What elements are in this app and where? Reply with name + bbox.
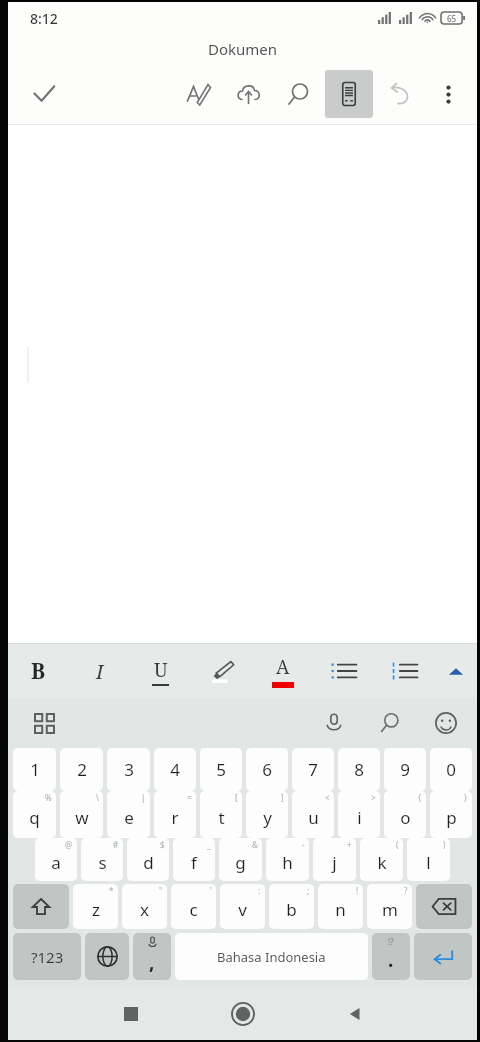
staticText: 8 [354,758,364,781]
staticText: I [96,658,104,685]
button[interactable]: Home [219,990,267,1038]
button[interactable]: \ [60,791,103,838]
staticText: > [371,792,376,803]
staticText: c [189,898,198,921]
button[interactable]: 6 [246,748,288,791]
staticText: [ [235,792,238,803]
button[interactable]: Highlight [191,644,252,698]
button[interactable]: 9 [384,748,426,791]
button[interactable]: Search [275,71,321,117]
button[interactable]: ( [360,838,403,881]
button[interactable]: ? [367,884,412,929]
button[interactable]: @ [35,838,77,881]
staticText: 7 [308,758,318,781]
button[interactable]: Comma and voice [133,933,171,980]
staticText: o [400,806,411,829]
button[interactable]: < [292,791,334,838]
button[interactable]: Backspace [416,884,472,929]
staticText: & [252,839,258,850]
button[interactable]: Ink [175,71,221,117]
button[interactable]: Voice input [317,706,351,740]
staticText: @ [65,839,73,850]
button[interactable]: Mobile view [325,70,373,118]
button[interactable]: Bulleted list [313,644,374,698]
button[interactable]: 4 [154,748,196,791]
button[interactable]: & [219,838,262,881]
staticText: !? [388,936,394,947]
staticText: U [154,657,168,683]
button[interactable]: 0 [430,748,472,791]
button[interactable]: = [154,791,196,838]
button[interactable]: Search [373,706,407,740]
button[interactable]: + [313,838,356,881]
staticText: d [143,851,154,874]
button[interactable]: Back [331,990,379,1038]
button[interactable]: Bold [8,644,69,698]
button[interactable]: { [384,791,426,838]
staticText: ? [404,885,408,896]
staticText: v [238,898,247,921]
button[interactable]: [ [200,791,242,838]
button[interactable]: Undo [377,71,423,117]
button[interactable]: 7 [292,748,334,791]
button[interactable]: Expand [435,644,477,698]
staticText: a [51,851,61,874]
staticText: y [263,806,272,829]
button[interactable]: : [220,884,265,929]
staticText: . [388,947,394,973]
button[interactable]: ?123 [13,933,81,980]
button[interactable]: Keyboard menu [24,703,64,743]
button[interactable]: Save to cloud [225,71,271,117]
button[interactable]: Change language [85,933,129,980]
staticText: l [426,851,431,874]
button[interactable]: Numbered list [374,644,435,698]
staticText: , [149,949,155,975]
button[interactable]: * [73,884,118,929]
button[interactable]: > [338,791,380,838]
staticText: n [335,898,346,921]
staticText: 3 [124,758,134,781]
staticText: 2 [77,758,87,781]
button[interactable]: 8 [338,748,380,791]
button[interactable]: ; [269,884,314,929]
staticText: h [282,851,293,874]
button[interactable]: " [122,884,167,929]
button[interactable]: Font color [252,644,313,698]
staticText: g [235,851,246,874]
staticText: ) [443,839,446,850]
staticText: % [45,792,52,803]
button[interactable]: ! [318,884,363,929]
staticText: { [418,792,422,803]
button[interactable]: ] [246,791,288,838]
button[interactable]: Emoji [429,706,463,740]
button[interactable]: ) [407,838,450,881]
button[interactable]: Bahasa Indonesia [175,933,368,980]
staticText: i [357,806,362,829]
button[interactable]: 5 [200,748,242,791]
button[interactable]: # [81,838,123,881]
button[interactable]: - [266,838,309,881]
button[interactable]: Period [372,933,410,980]
button[interactable]: Enter [414,933,472,980]
button[interactable]: } [430,791,472,838]
button[interactable]: More options [425,71,471,117]
button[interactable]: Italic [69,644,130,698]
button[interactable]: Recents [107,990,155,1038]
staticText: 1 [30,758,40,781]
staticText: + [347,839,352,850]
button[interactable]: _ [173,838,215,881]
button[interactable]: | [107,791,150,838]
staticText: " [159,885,163,896]
button[interactable]: $ [127,838,169,881]
button[interactable]: Done [22,72,66,116]
staticText: k [377,851,387,874]
button[interactable]: 3 [107,748,150,791]
button[interactable]: Shift [13,884,69,929]
button[interactable]: 2 [60,748,103,791]
button[interactable]: 1 [13,748,56,791]
button[interactable]: Underline [130,644,191,698]
button[interactable]: % [13,791,56,838]
staticText: b [286,898,297,921]
button[interactable]: ' [171,884,216,929]
staticText: e [124,806,134,829]
